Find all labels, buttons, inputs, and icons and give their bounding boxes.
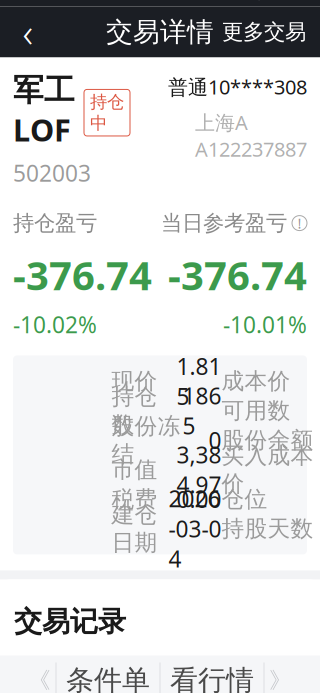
staticText: 《 [28,667,51,693]
staticText: 0.00 [176,484,221,514]
button[interactable]: 条件单 [56,655,159,693]
staticText: 0 [208,425,221,455]
staticText: 更多交易 [222,19,306,45]
staticText: 建仓日期 [111,501,157,556]
button[interactable]: Back [6,10,50,54]
staticText: 仓位 [221,485,267,513]
staticText: ‹ [22,5,33,58]
staticText: 3,384.97 [176,440,221,500]
staticText: 交易记录 [14,604,126,639]
staticText: 当日参考盈亏 [161,210,287,236]
staticText: 502003 [13,158,91,188]
staticText: 普通10****308 [168,73,307,100]
staticText: 交易详情 [106,16,214,48]
staticText: 股份冻结 [111,412,180,468]
button[interactable]: Previous [23,655,55,693]
button[interactable]: 看行情 [160,655,263,693]
staticText: 条件单 [66,663,150,693]
staticText: 买入成本价 [221,442,313,497]
staticText: 》 [269,667,292,693]
staticText: 2026-03-04 [168,483,221,574]
staticText: 可用数 [221,397,290,424]
staticText: -376.74 [13,248,152,301]
staticText: -10.02% [13,309,97,339]
staticText: 价格/数量 [122,667,214,693]
staticText: 持仓中 [90,91,124,134]
button[interactable]: Next [264,655,296,693]
staticText: 1865 [182,381,221,441]
staticText: 股份余额 [221,426,313,454]
staticText: ! [297,213,301,233]
staticText: 成本价 [221,367,290,395]
staticText: 看行情 [170,663,254,693]
staticText: 持仓盈亏 [13,210,97,236]
staticText: 持仓数 [111,383,157,438]
staticText: 操作/时间 [14,667,106,693]
staticText: -376.74 [168,248,307,301]
staticText: 上海A A122237887 [195,109,307,162]
staticText: 1.815 [176,351,221,411]
staticText: 市值 [111,456,157,483]
staticText: 持股天数 [221,515,313,542]
staticText: 现价 [111,367,157,395]
staticText: 税费 [111,485,157,513]
button[interactable]: 更多交易 [214,10,314,54]
staticText: 军工LOF [13,71,75,150]
staticText: -10.01% [223,309,307,339]
staticText: 金额/税费 [232,667,320,693]
